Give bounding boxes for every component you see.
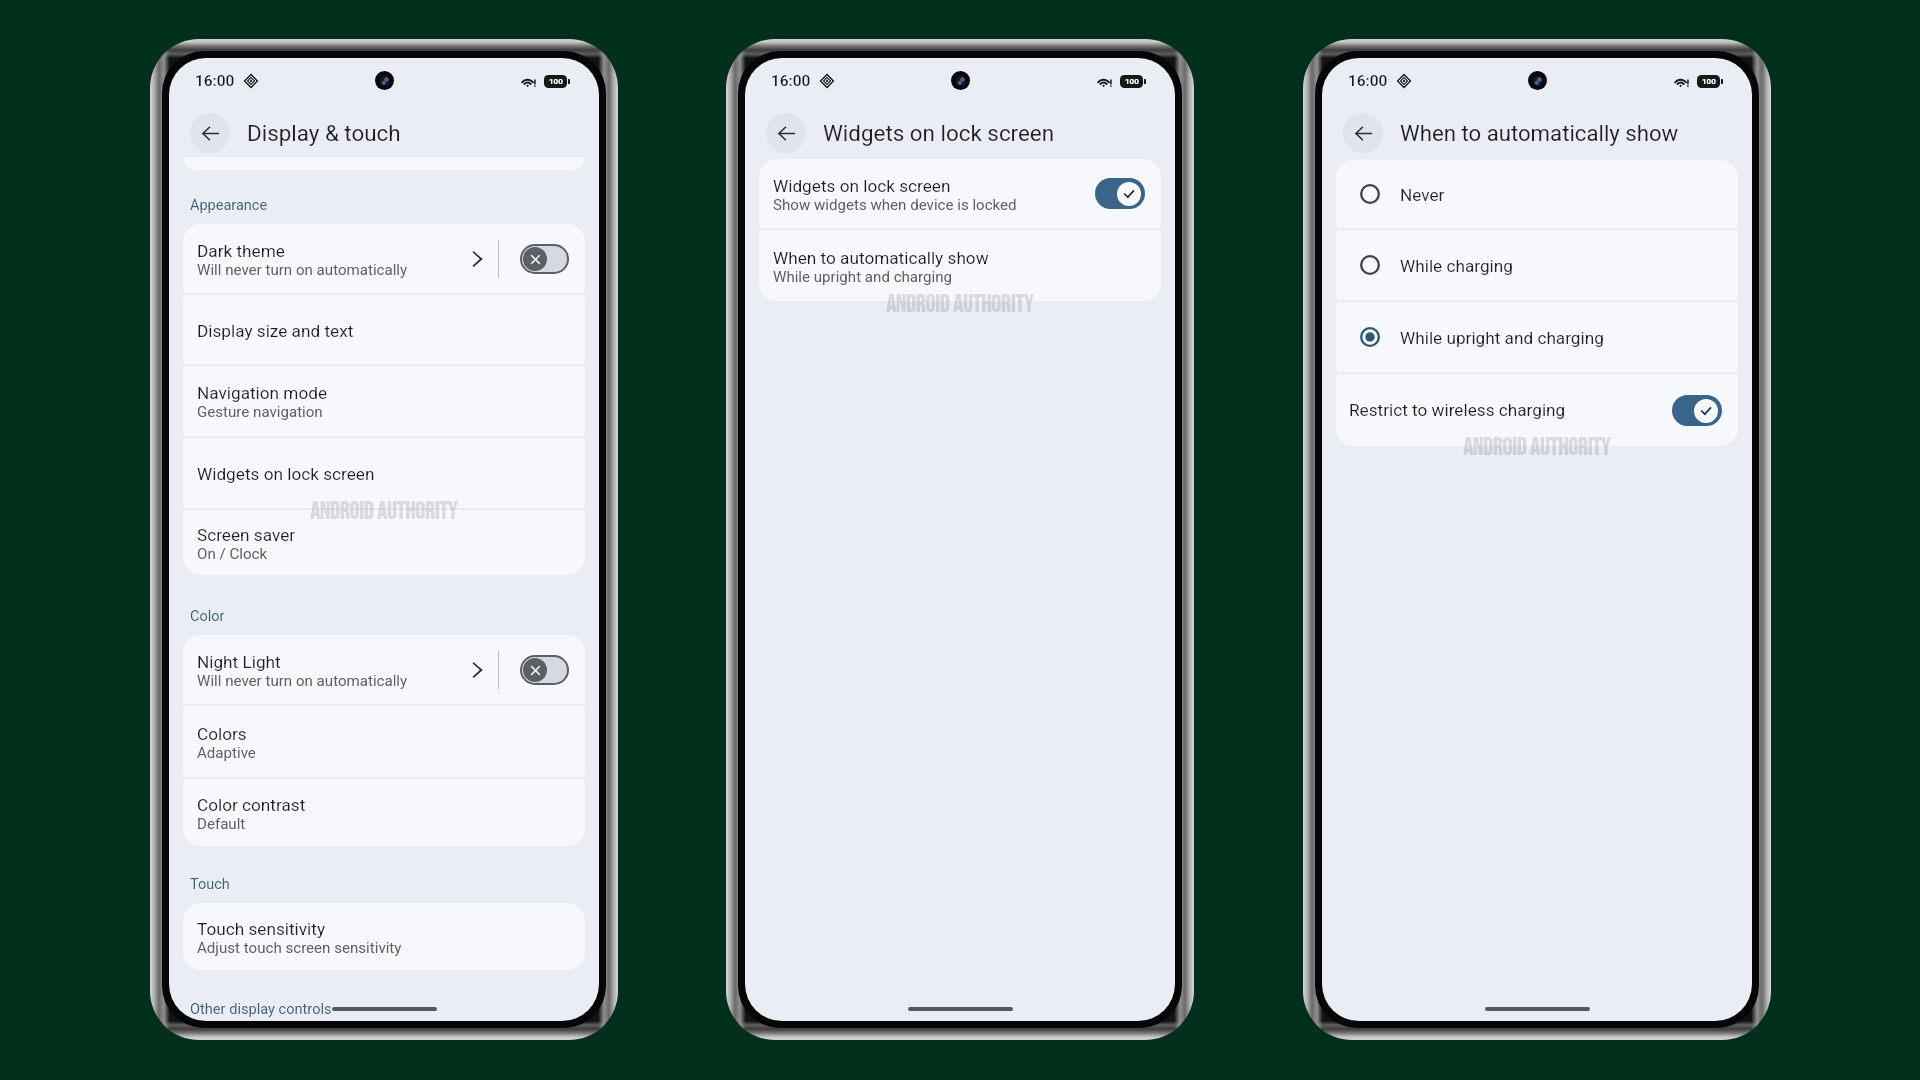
button[interactable]: Never: [1336, 160, 1738, 228]
staticText: 16:00: [195, 72, 235, 90]
staticText: Widgets on lock screen: [197, 464, 375, 484]
staticText: Color: [190, 608, 225, 625]
staticText: Adjust touch screen sensitivity: [197, 939, 402, 957]
staticText: While charging: [1400, 256, 1513, 276]
staticText: Color contrast: [197, 795, 306, 815]
button[interactable]: Toggle on: [1095, 178, 1145, 209]
button[interactable]: While upright and charging: [1336, 302, 1738, 372]
staticText: ANDROID AUTHORITY: [886, 290, 1034, 319]
staticText: Will never turn on automatically: [197, 672, 408, 690]
staticText: When to automatically show: [773, 248, 989, 268]
staticText: Night Light: [197, 652, 281, 672]
staticText: Display & touch: [247, 120, 401, 146]
button[interactable]: Screen saver: [183, 510, 585, 575]
staticText: While upright and charging: [773, 268, 953, 286]
button[interactable]: Back: [190, 113, 230, 153]
button[interactable]: Toggle off: [520, 244, 569, 274]
staticText: Touch: [190, 876, 230, 893]
staticText: Navigation mode: [197, 383, 328, 403]
staticText: Show widgets when device is locked: [773, 196, 1017, 214]
staticText: 100: [1125, 77, 1139, 86]
staticText: While upright and charging: [1400, 328, 1604, 348]
button[interactable]: Navigation mode: [183, 366, 585, 436]
button[interactable]: Colors: [183, 706, 585, 777]
staticText: 16:00: [1348, 72, 1388, 90]
staticText: On / Clock: [197, 545, 268, 563]
staticText: Touch sensitivity: [197, 919, 326, 939]
staticText: Appearance: [190, 197, 268, 214]
staticText: Display size and text: [197, 321, 354, 341]
button[interactable]: Dark theme: [183, 224, 585, 293]
staticText: Adaptive: [197, 744, 256, 762]
staticText: ANDROID AUTHORITY: [310, 497, 458, 526]
button[interactable]: Widgets on lock screen: [759, 159, 1161, 228]
button[interactable]: Night Light: [183, 635, 585, 704]
button[interactable]: Display size and text: [183, 295, 585, 364]
button[interactable]: Touch sensitivity: [183, 903, 585, 970]
button[interactable]: Restrict to wireless charging: [1336, 374, 1738, 446]
button[interactable]: Back: [1343, 113, 1383, 153]
button[interactable]: Toggle on: [1672, 395, 1722, 426]
staticText: Colors: [197, 724, 247, 744]
staticText: Will never turn on automatically: [197, 261, 408, 279]
staticText: When to automatically show: [1400, 120, 1679, 146]
staticText: Restrict to wireless charging: [1349, 400, 1672, 420]
staticText: 100: [1702, 77, 1716, 86]
staticText: Widgets on lock screen: [823, 120, 1055, 146]
staticText: Never: [1400, 185, 1445, 205]
staticText: Other display controls: [190, 1000, 332, 1017]
staticText: 16:00: [771, 72, 811, 90]
staticText: Default: [197, 815, 246, 833]
button[interactable]: While charging: [1336, 230, 1738, 300]
staticText: Widgets on lock screen: [773, 176, 951, 196]
button[interactable]: Widgets on lock screen: [183, 438, 585, 508]
staticText: ANDROID AUTHORITY: [1463, 433, 1611, 462]
button[interactable]: Color contrast: [183, 779, 585, 846]
staticText: Dark theme: [197, 241, 285, 261]
button[interactable]: Toggle off: [520, 655, 569, 685]
staticText: Gesture navigation: [197, 403, 323, 421]
staticText: Screen saver: [197, 525, 296, 545]
button[interactable]: Back: [766, 113, 806, 153]
staticText: 100: [549, 77, 563, 86]
button[interactable]: When to automatically show: [759, 230, 1161, 301]
